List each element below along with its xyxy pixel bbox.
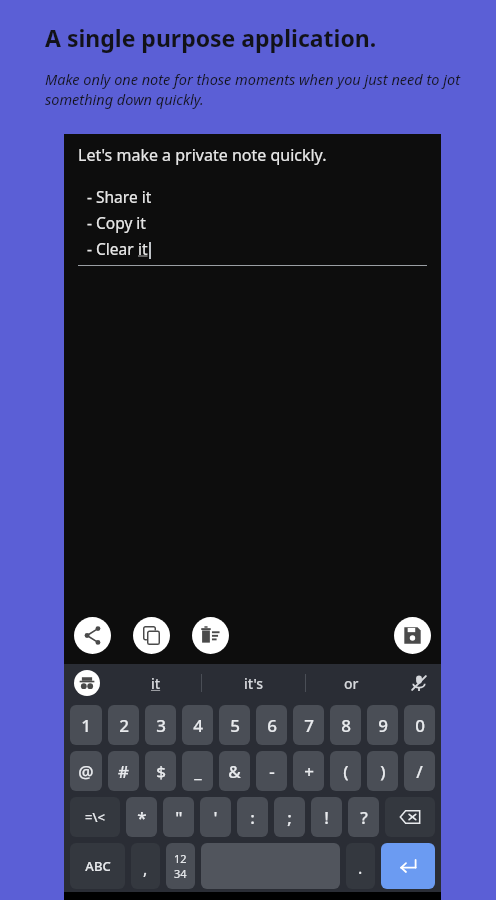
staticText: : <box>250 806 255 829</box>
staticText: 3 <box>156 714 166 737</box>
button[interactable]: Save <box>394 617 431 654</box>
staticText: or <box>344 674 359 693</box>
button[interactable]: " <box>163 797 194 837</box>
button[interactable]: ( <box>330 751 361 791</box>
button[interactable]: 2 <box>108 705 139 745</box>
staticText: _ <box>194 760 202 783</box>
staticText: 4 <box>193 714 203 737</box>
staticText: 0 <box>415 714 425 737</box>
button[interactable]: ABC <box>70 843 125 889</box>
staticText: ( <box>343 760 349 783</box>
staticText: . <box>358 857 363 879</box>
staticText: ' <box>213 806 218 829</box>
staticText: , <box>143 858 148 880</box>
button[interactable]: & <box>219 751 250 791</box>
staticText: Make only one note for those moments whe… <box>45 69 472 110</box>
button[interactable]: . <box>346 843 375 889</box>
button[interactable]: Incognito <box>64 664 110 702</box>
staticText: * <box>137 806 147 829</box>
staticText: 7 <box>304 714 314 737</box>
button[interactable]: ) <box>367 751 398 791</box>
staticText: it <box>138 238 148 259</box>
staticText: ? <box>360 806 368 829</box>
staticText: $ <box>156 760 166 783</box>
staticText: 2 <box>119 714 129 737</box>
button[interactable]: it's <box>202 664 305 702</box>
button[interactable]: Backspace <box>385 797 435 837</box>
staticText: ) <box>380 760 386 783</box>
button[interactable]: + <box>293 751 324 791</box>
button[interactable]: Enter <box>381 843 435 889</box>
staticText: @ <box>78 760 94 783</box>
staticText: 5 <box>230 714 240 737</box>
button[interactable]: 5 <box>219 705 250 745</box>
button[interactable]: Share <box>74 617 111 654</box>
staticText: it's <box>244 674 264 693</box>
button[interactable]: ? <box>348 797 379 837</box>
staticText: - Share it <box>87 186 152 207</box>
staticText: ! <box>324 806 329 829</box>
button[interactable]: _ <box>182 751 213 791</box>
staticText: it <box>151 674 161 693</box>
button[interactable]: ; <box>274 797 305 837</box>
button[interactable]: : <box>237 797 268 837</box>
staticText: =\< <box>85 808 105 826</box>
staticText: 12 <box>174 851 187 866</box>
button[interactable]: Clear <box>192 617 229 654</box>
button[interactable]: # <box>108 751 139 791</box>
button[interactable]: Let's make a private note quickly. <box>78 134 427 606</box>
button[interactable]: 0 <box>404 705 435 745</box>
staticText: A single purpose application. <box>45 22 377 53</box>
button[interactable]: * <box>126 797 157 837</box>
button[interactable]: =\< <box>70 797 120 837</box>
button[interactable]: or <box>306 664 397 702</box>
button[interactable]: 9 <box>367 705 398 745</box>
button[interactable]: , <box>131 843 160 889</box>
button[interactable]: @ <box>70 751 102 791</box>
staticText: - Clear <box>87 238 138 259</box>
staticText: 34 <box>174 866 187 881</box>
button[interactable]: 6 <box>256 705 287 745</box>
button[interactable]: Numbers <box>166 843 195 889</box>
staticText: ABC <box>85 857 111 875</box>
button[interactable]: it <box>110 664 201 702</box>
staticText: " <box>175 806 183 829</box>
button[interactable]: Voice input off <box>397 664 441 702</box>
staticText: & <box>228 760 241 783</box>
button[interactable]: / <box>404 751 435 791</box>
button[interactable]: 8 <box>330 705 361 745</box>
staticText: 6 <box>267 714 277 737</box>
button[interactable]: 3 <box>145 705 176 745</box>
staticText: 1 <box>81 714 91 737</box>
staticText: - Copy it <box>87 212 146 233</box>
staticText: + <box>304 760 314 783</box>
staticText: Let's make a private note quickly. <box>78 144 327 166</box>
button[interactable]: ! <box>311 797 342 837</box>
staticText: / <box>416 760 423 783</box>
button[interactable]: 4 <box>182 705 213 745</box>
staticText: # <box>118 760 129 783</box>
staticText: ; <box>287 806 292 829</box>
staticText: 9 <box>378 714 388 737</box>
staticText: - <box>269 760 275 783</box>
button[interactable]: Copy <box>133 617 170 654</box>
button[interactable]: ' <box>200 797 231 837</box>
staticText: 8 <box>341 714 351 737</box>
button[interactable]: $ <box>145 751 176 791</box>
button[interactable]: 1 <box>70 705 102 745</box>
button[interactable]: - <box>256 751 287 791</box>
button[interactable]: 7 <box>293 705 324 745</box>
